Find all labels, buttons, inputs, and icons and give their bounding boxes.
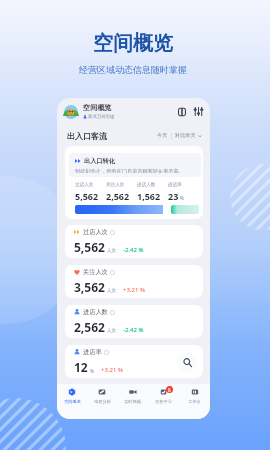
staticText: 人次 (107, 288, 116, 294)
staticText: +3.21 % (123, 286, 145, 294)
staticText: 电置分析 (94, 399, 111, 404)
staticText: 关注人次 (106, 182, 125, 188)
staticText: 5,562 (74, 239, 105, 255)
staticText: % (90, 368, 94, 374)
staticText: 过店人次 (75, 182, 94, 188)
staticText: % (180, 195, 184, 201)
button[interactable]: Filter (194, 107, 203, 116)
staticText: 人次 (107, 328, 116, 334)
staticText: 人次 (107, 248, 116, 254)
staticText: 进店率 (83, 348, 102, 356)
staticText: 1,562 (137, 190, 161, 202)
button[interactable]: Layout (178, 108, 186, 116)
staticText: 任务中心 (155, 399, 172, 404)
button[interactable]: Search (177, 352, 197, 372)
button[interactable]: 6 (148, 384, 179, 404)
staticText: 进店人数 (137, 182, 156, 188)
staticText: 6 (168, 387, 171, 393)
staticText: 空间概览 (93, 31, 173, 56)
button[interactable]: 空间概览 (57, 384, 87, 404)
button[interactable]: 工作台 (179, 384, 210, 404)
staticText: -2.42 % (123, 246, 144, 254)
staticText: 实时视频 (124, 399, 141, 404)
staticText: 到此刻为止，您所在门店进店顾客转化率不高。 (75, 168, 184, 173)
staticText: 5,562 (75, 190, 99, 202)
button[interactable]: 今天 (157, 132, 202, 139)
staticText: 12 (74, 359, 88, 375)
staticText: 关注人次 (83, 268, 108, 276)
staticText: -2.42 % (123, 326, 144, 334)
button[interactable]: 关注人次 (65, 265, 203, 298)
staticText: 空间概览 (83, 103, 112, 112)
staticText: 对比昨天 (175, 132, 196, 139)
staticText: 出入口客流 (67, 131, 107, 141)
button[interactable]: 进店率 (65, 345, 203, 378)
staticText: 2,562 (106, 190, 130, 202)
button[interactable]: 电置分析 (87, 384, 117, 404)
staticText: 过店人次 (83, 228, 108, 236)
staticText: 进店率 (168, 182, 182, 188)
staticText: 今天 (157, 132, 168, 139)
button[interactable]: 进店人数 (65, 305, 203, 338)
staticText: 2,562 (74, 319, 105, 335)
button[interactable]: 实时视频 (117, 384, 148, 404)
staticText: 空间概览 (64, 399, 81, 404)
button[interactable]: 过店人次 (65, 225, 203, 258)
staticText: 出入口转化 (84, 157, 115, 165)
staticText: 黄龙万科店铺 (88, 114, 115, 120)
staticText: 进店人数 (83, 308, 108, 316)
staticText: +3.21 % (101, 366, 123, 374)
staticText: 经营区域动态信息随时掌握 (79, 64, 187, 75)
staticText: 工作台 (188, 399, 201, 404)
staticText: 23 (168, 190, 179, 202)
staticText: 3,562 (74, 279, 105, 295)
